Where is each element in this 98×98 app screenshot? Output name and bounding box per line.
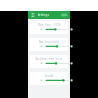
- staticText: One line · 50%: [38, 23, 60, 27]
- staticText: Save: [62, 14, 66, 16]
- staticText: Settings: [38, 13, 49, 17]
- button[interactable]: Two lines here: [30, 38, 68, 51]
- button[interactable]: Fourth: [30, 72, 68, 85]
- button[interactable]: One line · 50%: [30, 21, 68, 34]
- staticText: Another one here: [35, 57, 62, 61]
- staticText: Fourth: [44, 74, 53, 78]
- staticText: Two lines here: [38, 40, 59, 44]
- button[interactable]: Save: [61, 14, 68, 16]
- button[interactable]: Another one here: [30, 55, 68, 68]
- button[interactable]: Menu: [30, 11, 35, 19]
